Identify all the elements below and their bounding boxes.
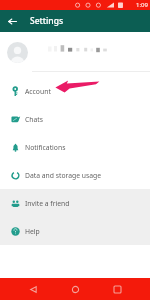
button[interactable]: Account [0, 77, 150, 105]
staticText: 1:09 [136, 1, 148, 9]
button[interactable]: Invite a friend [0, 189, 150, 217]
staticText: Invite a friend [25, 199, 70, 208]
staticText: Help [25, 227, 40, 236]
button[interactable]: Notifications [0, 133, 150, 161]
button[interactable]: Recent apps [106, 278, 128, 300]
staticText: Settings [30, 15, 64, 27]
button[interactable]: Home [64, 278, 86, 300]
staticText: Chats [25, 115, 44, 124]
button[interactable]: Back [22, 278, 44, 300]
button[interactable]: Data and storage usage [0, 161, 150, 189]
button[interactable] [0, 32, 150, 72]
button[interactable]: Back [0, 10, 24, 32]
staticText: Notifications [25, 143, 66, 152]
button[interactable]: Chats [0, 105, 150, 133]
staticText: Data and storage usage [25, 171, 102, 180]
staticText: Account [25, 87, 51, 96]
button[interactable]: Help [0, 217, 150, 245]
